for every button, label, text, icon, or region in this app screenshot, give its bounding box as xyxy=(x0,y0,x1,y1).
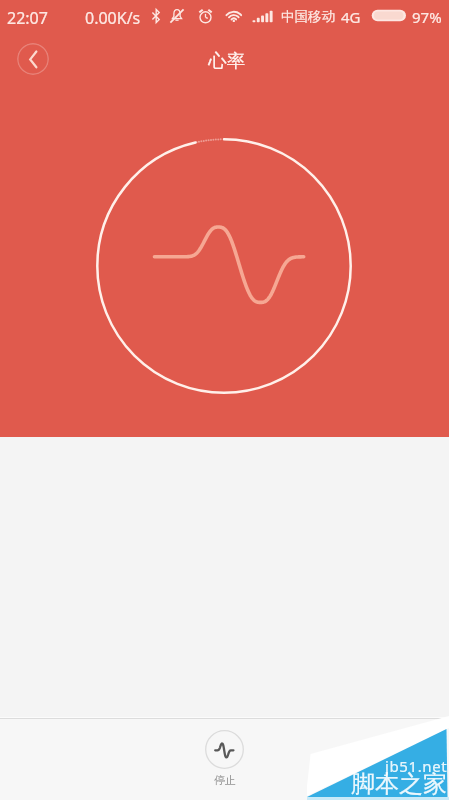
button[interactable]: 停止 xyxy=(205,730,244,787)
staticText: 22:07 xyxy=(7,7,48,29)
staticText: 停止 xyxy=(214,773,236,787)
staticText: jb51.net xyxy=(385,756,448,776)
staticText: 97% xyxy=(412,7,442,27)
button[interactable]: Back xyxy=(17,43,49,75)
staticText: 4G xyxy=(341,7,361,27)
staticText: 心率 xyxy=(208,49,245,72)
staticText: 脚本之家 xyxy=(351,769,447,799)
staticText: 中国移动 xyxy=(281,8,335,25)
staticText: 0.00K/s xyxy=(85,7,141,29)
